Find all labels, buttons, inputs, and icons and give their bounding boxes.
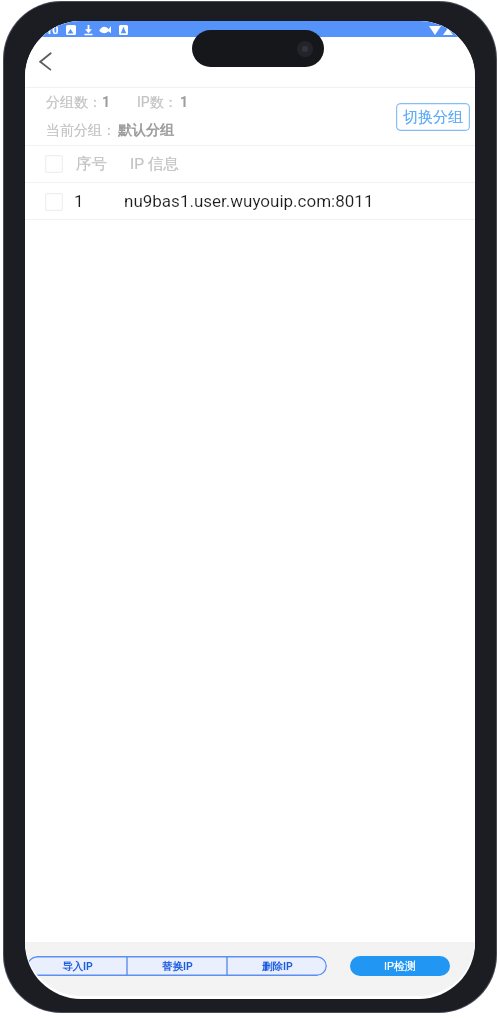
staticText: 删除IP	[262, 960, 293, 973]
staticText: 当前分组：	[46, 122, 116, 140]
button[interactable]: 切换分组	[396, 103, 470, 131]
button[interactable]: Select	[45, 193, 63, 211]
staticText: 10	[46, 24, 59, 37]
staticText: 1	[102, 94, 111, 110]
staticText: 分组数：	[46, 94, 102, 112]
staticText: IP检测	[384, 959, 416, 973]
button[interactable]: 删除IP	[227, 956, 327, 976]
staticText: 默认分组	[118, 122, 174, 140]
staticText: 切换分组	[403, 108, 463, 127]
button[interactable]: 替换IP	[127, 956, 227, 976]
button[interactable]: IP检测	[350, 956, 450, 976]
staticText: IP数：	[137, 94, 178, 112]
staticText: 导入IP	[62, 960, 93, 973]
button[interactable]: 导入IP	[27, 956, 127, 976]
staticText: IP 信息	[130, 154, 179, 174]
staticText: 1	[74, 191, 84, 211]
staticText: 序号	[76, 154, 107, 174]
button[interactable]: Select	[45, 155, 63, 173]
staticText: nu9bas1.user.wuyouip.com:8011	[124, 191, 374, 211]
button[interactable]	[25, 183, 475, 219]
staticText: 1	[180, 94, 189, 110]
button[interactable]: Back	[28, 44, 63, 79]
staticText: 替换IP	[162, 960, 193, 973]
